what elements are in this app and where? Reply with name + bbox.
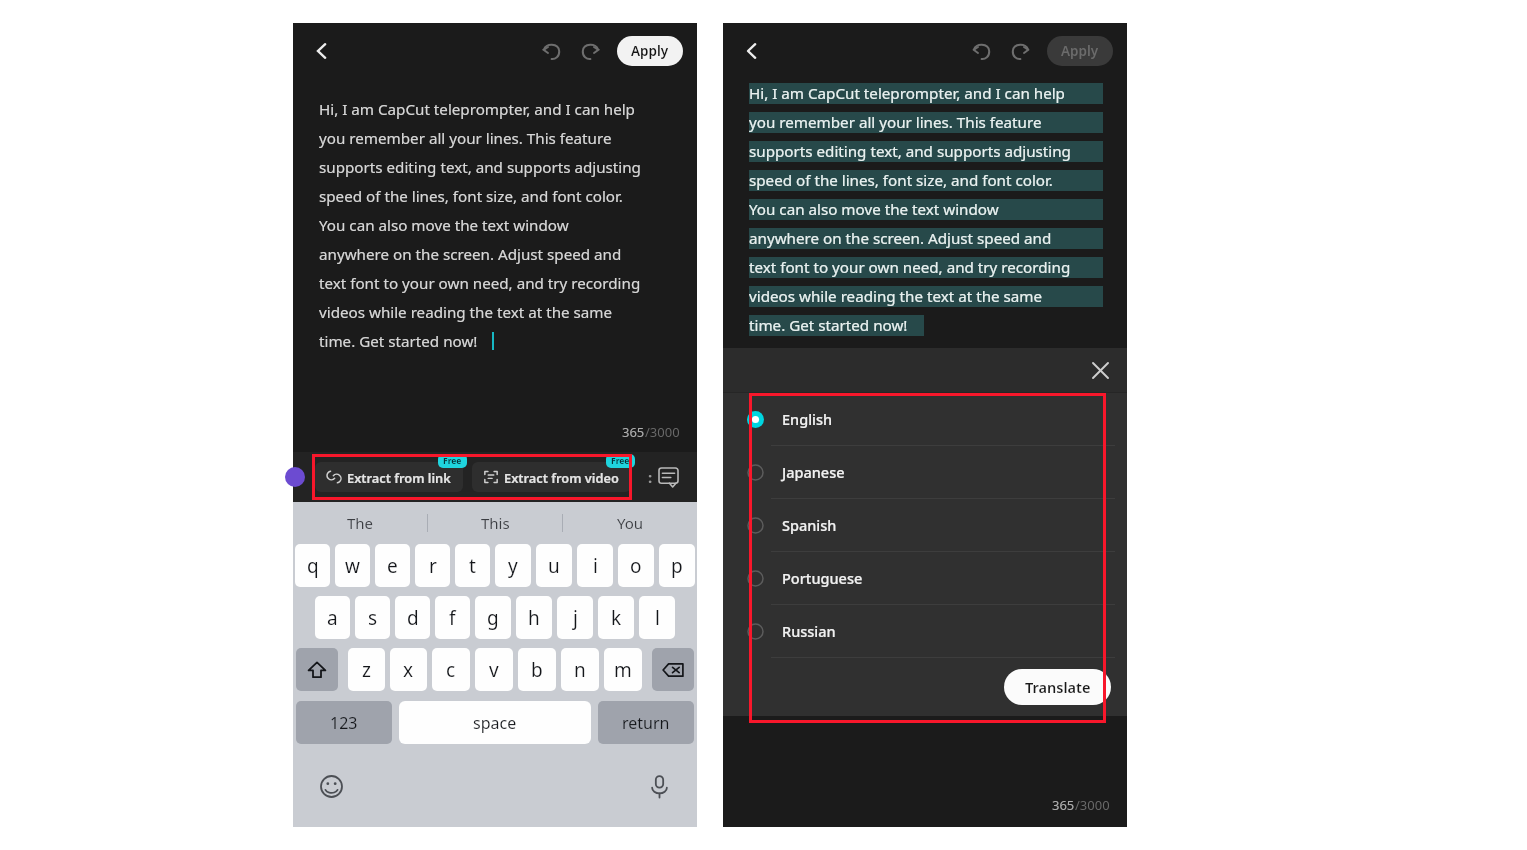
- staticText: anywhere on the screen. Adjust speed and: [319, 244, 622, 265]
- staticText: Portuguese: [782, 568, 863, 588]
- button[interactable]: Russian: [747, 605, 1105, 657]
- button[interactable]: Extract from link: [327, 462, 451, 492]
- staticText: b: [531, 657, 543, 683]
- button[interactable]: Apply: [617, 36, 683, 66]
- staticText: Apply: [1061, 42, 1099, 60]
- button[interactable]: Shift: [296, 648, 338, 691]
- button[interactable]: p: [659, 544, 695, 587]
- button[interactable]: Effects: [285, 467, 305, 487]
- button[interactable]: You: [563, 502, 697, 544]
- staticText: English: [782, 409, 833, 429]
- staticText: m: [614, 657, 632, 683]
- staticText: time. Get started now!: [319, 331, 478, 352]
- button[interactable]: o: [618, 544, 654, 587]
- button[interactable]: Back: [735, 34, 769, 68]
- staticText: 123: [330, 712, 358, 734]
- button[interactable]: w: [335, 544, 370, 587]
- staticText: p: [671, 553, 683, 579]
- staticText: 365: [1052, 796, 1075, 814]
- staticText: l: [655, 605, 660, 631]
- staticText: Japanese: [782, 462, 845, 482]
- staticText: Translate: [1025, 677, 1091, 697]
- button[interactable]: Portuguese: [747, 552, 1105, 604]
- button[interactable]: Close: [1087, 357, 1113, 383]
- button[interactable]: t: [455, 544, 490, 587]
- button[interactable]: s: [355, 596, 390, 639]
- staticText: g: [487, 605, 499, 631]
- staticText: z: [362, 657, 371, 683]
- button[interactable]: This: [428, 502, 562, 544]
- button[interactable]: Emoji: [315, 770, 347, 802]
- button[interactable]: Redo: [575, 36, 605, 66]
- button[interactable]: q: [295, 544, 330, 587]
- button[interactable]: The: [293, 502, 427, 544]
- button[interactable]: k: [598, 596, 634, 639]
- button[interactable]: e: [375, 544, 410, 587]
- staticText: j: [573, 605, 578, 631]
- staticText: s: [368, 605, 378, 631]
- staticText: text font to your own need, and try reco…: [319, 273, 641, 294]
- button[interactable]: f: [435, 596, 470, 639]
- button[interactable]: return: [598, 701, 694, 744]
- staticText: r: [429, 553, 437, 579]
- staticText: return: [622, 712, 670, 734]
- button[interactable]: x: [390, 648, 427, 691]
- staticText: /3000: [645, 423, 680, 441]
- staticText: space: [473, 712, 517, 734]
- button[interactable]: j: [557, 596, 593, 639]
- button[interactable]: c: [432, 648, 470, 691]
- button[interactable]: Undo: [537, 36, 567, 66]
- staticText: f: [449, 605, 456, 631]
- button[interactable]: z: [348, 648, 385, 691]
- staticText: 365: [622, 423, 645, 441]
- staticText: q: [307, 553, 319, 579]
- staticText: Hi, I am CapCut teleprompter, and I can …: [749, 83, 1065, 104]
- button[interactable]: g: [475, 596, 511, 639]
- button[interactable]: Voice input: [643, 770, 675, 802]
- staticText: y: [508, 553, 518, 579]
- button[interactable]: v: [475, 648, 513, 691]
- staticText: Apply: [631, 42, 669, 60]
- button[interactable]: 123: [296, 701, 392, 744]
- button[interactable]: m: [604, 648, 642, 691]
- button[interactable]: l: [639, 596, 675, 639]
- button[interactable]: r: [415, 544, 450, 587]
- staticText: Free: [611, 455, 630, 467]
- button[interactable]: Undo: [967, 36, 997, 66]
- staticText: u: [548, 553, 560, 579]
- staticText: /3000: [1075, 796, 1110, 814]
- button[interactable]: Back: [305, 34, 339, 68]
- staticText: The: [347, 513, 374, 533]
- staticText: h: [528, 605, 540, 631]
- button[interactable]: h: [516, 596, 552, 639]
- button[interactable]: b: [518, 648, 556, 691]
- staticText: This: [481, 513, 510, 533]
- staticText: v: [489, 657, 499, 683]
- button[interactable]: Japanese: [747, 446, 1105, 498]
- button[interactable]: Redo: [1005, 36, 1035, 66]
- staticText: you remember all your lines. This featur…: [749, 112, 1042, 133]
- button[interactable]: space: [399, 701, 591, 744]
- button[interactable]: English: [747, 393, 1105, 445]
- button[interactable]: u: [536, 544, 572, 587]
- button[interactable]: Captions: [655, 464, 681, 490]
- button[interactable]: n: [561, 648, 599, 691]
- button[interactable]: Backspace: [652, 648, 694, 691]
- button[interactable]: a: [315, 596, 350, 639]
- button[interactable]: Spanish: [747, 499, 1105, 551]
- staticText: a: [327, 605, 338, 631]
- staticText: t: [469, 553, 476, 579]
- button[interactable]: Translate: [1004, 669, 1111, 705]
- button[interactable]: Extract from video: [484, 462, 619, 492]
- button[interactable]: y: [495, 544, 531, 587]
- staticText: You can also move the text window: [319, 215, 569, 236]
- staticText: speed of the lines, font size, and font …: [319, 186, 623, 207]
- staticText: you remember all your lines. This featur…: [319, 128, 612, 149]
- staticText: supports editing text, and supports adju…: [319, 157, 641, 178]
- staticText: x: [403, 657, 414, 683]
- button[interactable]: i: [577, 544, 613, 587]
- button[interactable]: Apply: [1047, 36, 1113, 66]
- staticText: k: [611, 605, 622, 631]
- staticText: videos while reading the text at the sam…: [749, 286, 1043, 307]
- button[interactable]: d: [395, 596, 430, 639]
